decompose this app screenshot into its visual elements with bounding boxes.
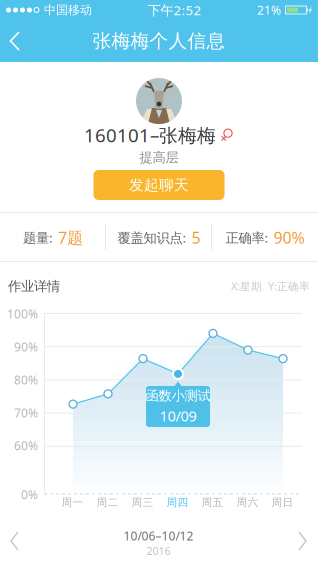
staticText: 90% <box>14 339 38 355</box>
button[interactable]: 发起聊天 <box>93 170 224 200</box>
staticText: 60% <box>14 438 38 454</box>
staticText: 周二 <box>96 496 118 509</box>
staticText: 周日 <box>271 496 293 509</box>
staticText: 周六 <box>236 496 258 509</box>
staticText: 中国移动 <box>44 3 92 17</box>
staticText: 80% <box>14 372 38 388</box>
staticText: 函数小测试 <box>145 388 210 404</box>
staticText: 覆盖知识点: <box>117 229 186 246</box>
staticText: 100% <box>7 306 38 322</box>
staticText: 10/09 <box>159 406 196 425</box>
button[interactable]: Previous week <box>0 516 36 566</box>
staticText: 90% <box>273 227 304 248</box>
staticText: 张梅梅个人信息 <box>92 29 225 52</box>
staticText: 下午2:52 <box>147 1 201 19</box>
staticText: 0% <box>21 487 38 503</box>
staticText: 发起聊天 <box>129 176 189 194</box>
staticText: 7题 <box>58 227 83 248</box>
staticText: 21% <box>257 2 281 18</box>
staticText: 题量: <box>23 229 53 246</box>
staticText: 70% <box>14 405 38 421</box>
staticText: 周四 <box>166 496 188 509</box>
staticText: 正确率: <box>225 229 268 246</box>
staticText: X:星期 Y:正确率 <box>231 279 310 293</box>
staticText: 2016 <box>146 544 170 558</box>
button[interactable]: Next week <box>281 516 318 566</box>
staticText: 周三 <box>131 496 153 509</box>
staticText: 10/06–10/12 <box>123 528 193 544</box>
staticText: 提高层 <box>139 149 178 166</box>
staticText: 5 <box>191 227 200 248</box>
staticText: 周一 <box>61 496 83 509</box>
staticText: 160101–张梅梅 <box>84 123 216 147</box>
button[interactable]: Back <box>0 20 43 62</box>
staticText: 周五 <box>201 496 223 509</box>
staticText: 作业详情 <box>8 278 60 294</box>
